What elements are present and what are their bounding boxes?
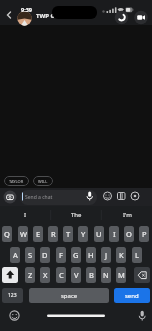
- staticText: Q: [4, 229, 10, 239]
- button[interactable]: TAYLOR: [4, 176, 29, 186]
- button[interactable]: F: [56, 247, 66, 263]
- staticText: R: [51, 229, 56, 239]
- button[interactable]: H: [86, 247, 96, 263]
- staticText: I: [24, 211, 27, 219]
- staticText: A: [13, 250, 18, 260]
- staticText: I'm: [123, 211, 132, 219]
- staticText: N: [103, 270, 109, 280]
- staticText: T: [66, 229, 71, 239]
- staticText: WILL: [38, 179, 48, 184]
- button[interactable]: space: [29, 288, 109, 303]
- staticText: U: [96, 229, 102, 239]
- button[interactable]: [134, 267, 150, 283]
- button[interactable]: Q: [2, 226, 12, 242]
- button[interactable]: G: [71, 247, 81, 263]
- staticText: Z: [28, 270, 33, 280]
- button[interactable]: R: [48, 226, 58, 242]
- staticText: C: [59, 270, 64, 280]
- staticText: The: [71, 211, 82, 219]
- staticText: space: [61, 292, 78, 300]
- button[interactable]: L: [132, 247, 142, 263]
- staticText: P: [142, 229, 147, 239]
- staticText: send: [125, 292, 139, 300]
- button[interactable]: T: [63, 226, 73, 242]
- button[interactable]: X: [40, 267, 50, 283]
- staticText: Send a chat: [25, 194, 53, 201]
- staticText: K: [119, 250, 124, 260]
- staticText: 9:39: [21, 6, 32, 13]
- staticText: M: [118, 270, 125, 280]
- button[interactable]: S: [25, 247, 35, 263]
- button[interactable]: N: [101, 267, 111, 283]
- staticText: W: [20, 229, 27, 239]
- button[interactable]: M: [116, 267, 126, 283]
- staticText: G: [73, 250, 79, 260]
- button[interactable]: C: [56, 267, 66, 283]
- button[interactable]: send: [114, 288, 150, 303]
- staticText: TAYLOR: [9, 179, 24, 184]
- staticText: O: [126, 229, 132, 239]
- button[interactable]: A: [10, 247, 20, 263]
- button[interactable]: O: [124, 226, 134, 242]
- button[interactable]: W: [18, 226, 28, 242]
- button[interactable]: WILL: [33, 176, 53, 186]
- button[interactable]: [2, 267, 18, 283]
- staticText: B: [89, 270, 94, 280]
- button[interactable]: I: [109, 226, 119, 242]
- staticText: J: [105, 250, 108, 260]
- button[interactable]: 123: [2, 288, 23, 303]
- button[interactable]: Z: [25, 267, 35, 283]
- button[interactable]: B: [86, 267, 96, 283]
- staticText: E: [36, 229, 41, 239]
- button[interactable]: [20, 190, 97, 205]
- button[interactable]: D: [40, 247, 50, 263]
- button[interactable]: P: [139, 226, 149, 242]
- staticText: X: [43, 270, 48, 280]
- staticText: F: [59, 250, 63, 260]
- button[interactable]: 9:39: [0, 0, 152, 25]
- button[interactable]: K: [116, 247, 126, 263]
- button[interactable]: Y: [78, 226, 88, 242]
- staticText: D: [42, 250, 48, 260]
- staticText: TWP G: [36, 12, 55, 20]
- staticText: S: [28, 250, 33, 260]
- button[interactable]: U: [94, 226, 104, 242]
- button[interactable]: E: [33, 226, 43, 242]
- staticText: H: [88, 250, 94, 260]
- staticText: Y: [81, 229, 86, 239]
- staticText: L: [135, 250, 139, 260]
- staticText: 123: [8, 292, 17, 299]
- button[interactable]: J: [101, 247, 111, 263]
- staticText: I: [113, 229, 116, 239]
- button[interactable]: V: [71, 267, 81, 283]
- staticText: V: [74, 270, 79, 280]
